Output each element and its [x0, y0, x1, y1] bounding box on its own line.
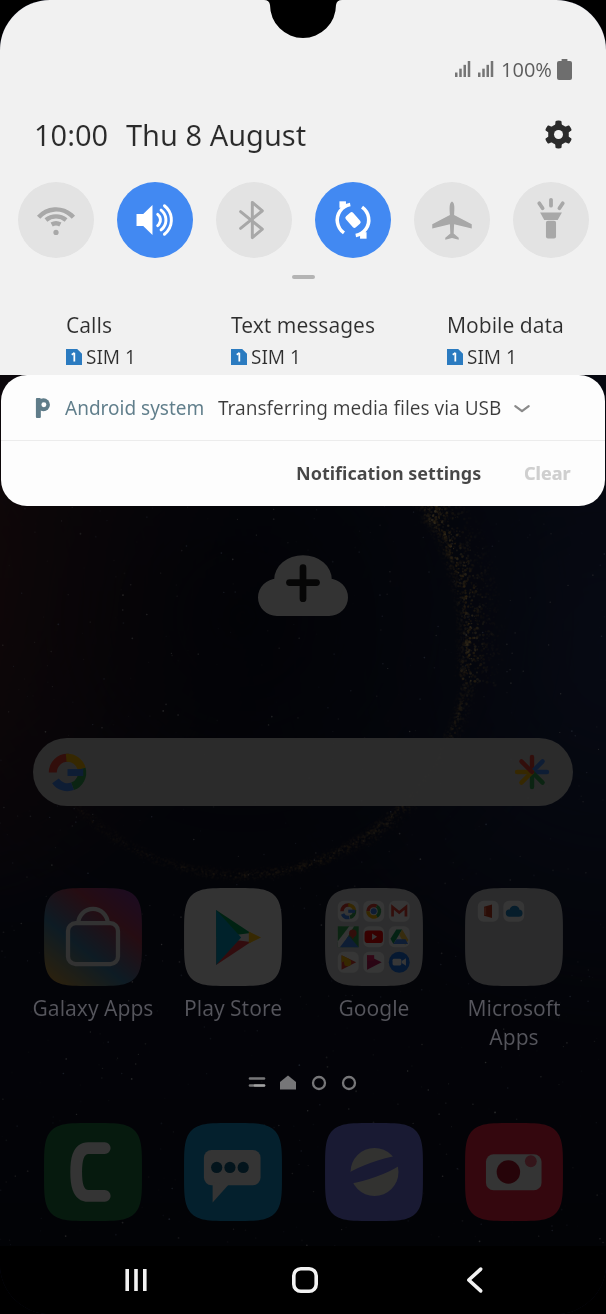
button[interactable] [513, 182, 589, 258]
button[interactable]: Calls [66, 311, 136, 370]
staticText: Notification settings [296, 461, 482, 486]
staticText: SIM 1 [467, 344, 517, 370]
button[interactable]: Clear [514, 451, 581, 496]
button[interactable]: Text messages [231, 311, 375, 370]
button[interactable] [414, 182, 490, 258]
button[interactable]: Play Store [163, 994, 303, 1023]
staticText: Text messages [231, 311, 375, 340]
staticText: Microsoft Apps [444, 994, 584, 1052]
button[interactable]: Home [275, 1246, 335, 1314]
button[interactable] [117, 182, 193, 258]
button[interactable]: Settings [536, 112, 580, 156]
button[interactable]: Mobile data [447, 311, 564, 370]
staticText: Play Store [163, 994, 303, 1023]
staticText: Mobile data [447, 311, 564, 340]
staticText: Calls [66, 311, 112, 340]
button[interactable]: Phone [42, 1121, 144, 1223]
staticText: Clear [524, 461, 571, 486]
staticText: 100% [501, 56, 552, 83]
staticText: SIM 1 [86, 344, 136, 370]
button[interactable]: Back [445, 1246, 505, 1314]
button[interactable] [33, 738, 573, 806]
staticText: Thu 8 August [126, 115, 307, 154]
button[interactable]: Recent apps [106, 1246, 166, 1314]
button[interactable] [18, 182, 94, 258]
button[interactable]: Notification settings [286, 451, 492, 496]
staticText: Transferring media files via USB [218, 395, 502, 421]
button[interactable]: Android system [1, 375, 605, 440]
button[interactable] [315, 182, 391, 258]
button[interactable]: Google [304, 994, 444, 1023]
staticText: Galaxy Apps [23, 994, 163, 1023]
button[interactable] [216, 182, 292, 258]
staticText: 10:00 [34, 115, 109, 154]
staticText: Android system [65, 395, 205, 421]
button[interactable]: Microsoft Apps [444, 994, 584, 1052]
button[interactable]: Messages [182, 1121, 284, 1223]
button[interactable]: Galaxy Apps [23, 994, 163, 1023]
staticText: Google [304, 994, 444, 1023]
button[interactable]: Camera [463, 1121, 565, 1223]
staticText: SIM 1 [251, 344, 301, 370]
button[interactable]: Internet [323, 1121, 425, 1223]
button[interactable]: Add widget [258, 554, 348, 616]
